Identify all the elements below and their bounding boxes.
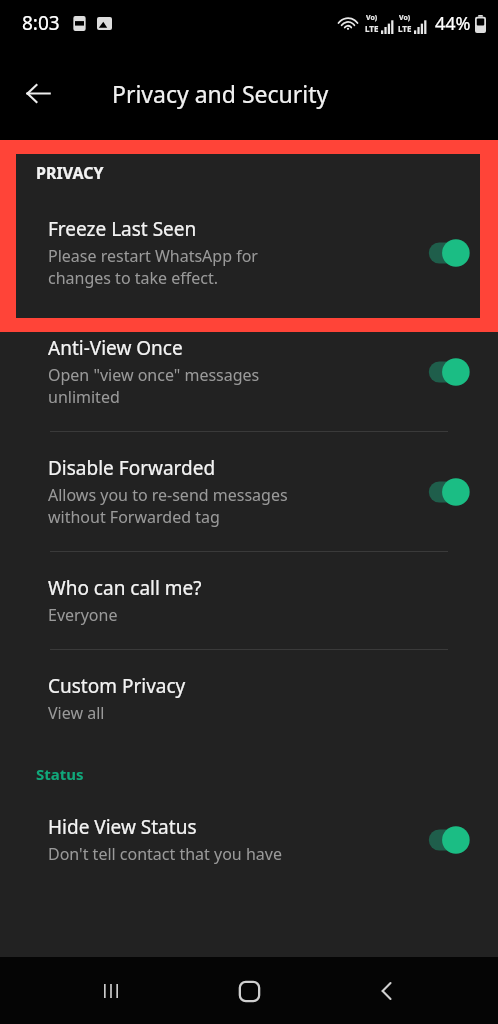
staticText: Allows you to re-send messages without F… [48,484,288,528]
button[interactable]: Home [222,964,276,1018]
button[interactable]: Recent apps [84,964,138,1018]
button[interactable]: Who can call me? [0,565,498,636]
staticText: Please restart WhatsApp for changes to t… [48,245,258,289]
button[interactable]: Toggle [424,238,472,268]
staticText: Don't tell contact that you have [48,843,282,865]
staticText: Who can call me? [48,575,202,601]
staticText: Vo) [366,13,378,23]
staticText: Vo) [399,13,411,23]
staticText: Hide View Status [48,814,197,840]
staticText: 8:03 [22,10,60,36]
button[interactable]: Custom Privacy [0,663,498,734]
staticText: View all [48,702,105,724]
button[interactable]: Toggle [424,825,472,855]
button[interactable]: Back [360,964,414,1018]
button[interactable]: Freeze Last Seen [0,206,498,299]
staticText: Status [36,764,84,784]
button[interactable]: Back [12,67,64,119]
button[interactable]: Hide View Status [0,804,498,875]
staticText: Disable Forwarded [48,455,216,481]
button[interactable]: Toggle [424,477,472,507]
staticText: Privacy and Security [112,78,329,109]
staticText: Anti-View Once [48,335,183,361]
staticText: 44% [435,11,471,36]
staticText: Everyone [48,604,118,626]
button[interactable]: Toggle [424,357,472,387]
button[interactable]: Anti-View Once [0,325,498,418]
staticText: PRIVACY [36,162,104,184]
staticText: Custom Privacy [48,673,186,699]
staticText: Open "view once" messages unlimited [48,364,260,408]
staticText: LTE [398,23,412,34]
button[interactable]: Disable Forwarded [0,445,498,538]
staticText: Freeze Last Seen [48,216,197,242]
staticText: LTE [365,23,379,34]
